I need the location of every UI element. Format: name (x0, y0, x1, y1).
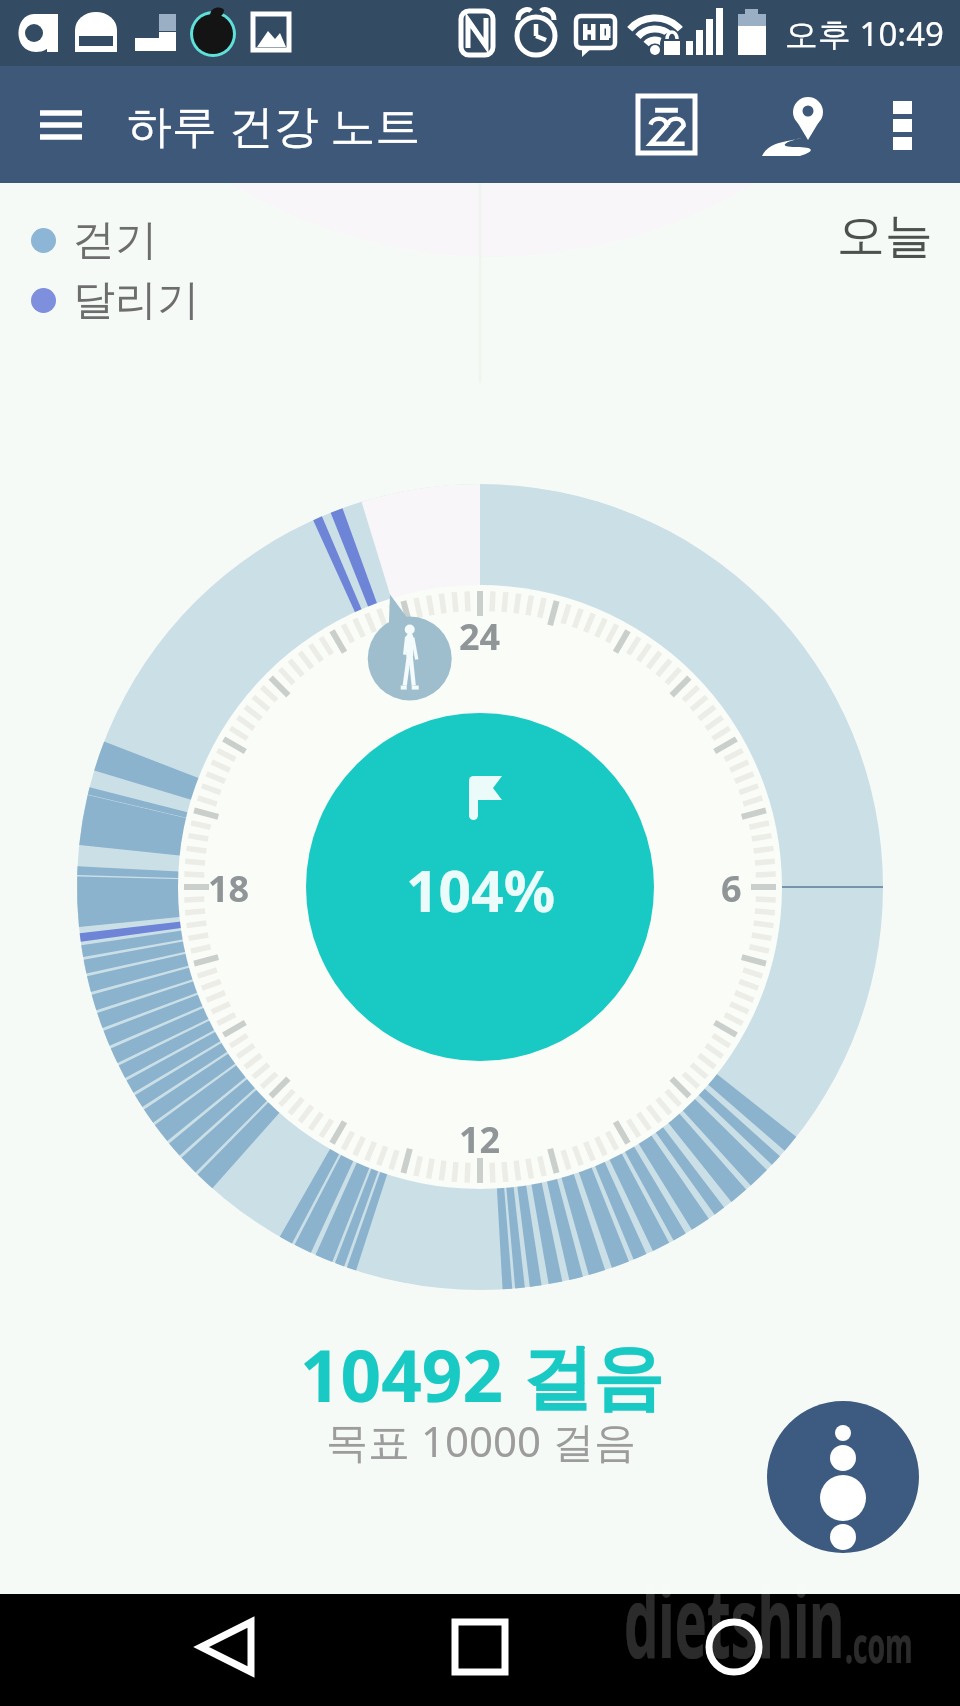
button[interactable]: 달리기 (31, 274, 199, 327)
button[interactable]: Home (425, 1591, 535, 1703)
staticText: 오후 10:49 (785, 11, 944, 56)
button[interactable]: Activity options (767, 1401, 919, 1553)
staticText: 하루 건강 노트 (127, 94, 421, 155)
button[interactable]: Back (172, 1591, 282, 1703)
button[interactable]: Recent apps (679, 1591, 789, 1703)
staticText: 18 (208, 864, 250, 913)
staticText: 목표 10000 걸음 (326, 1412, 636, 1469)
staticText: 104% (406, 851, 556, 929)
staticText: 12 (459, 1115, 501, 1164)
staticText: .com (845, 1609, 913, 1678)
button[interactable]: More options (845, 66, 960, 183)
staticText: 걷기 (73, 214, 157, 267)
button[interactable]: Navigation menu (0, 66, 122, 183)
staticText: 달리기 (73, 274, 199, 327)
staticText: 24 (459, 612, 501, 661)
staticText: 10492 걸음 (300, 1326, 664, 1423)
button[interactable]: Calendar (586, 66, 747, 183)
button[interactable]: 걷기 (31, 214, 157, 267)
staticText: 6 (721, 864, 742, 913)
staticText: 오늘 (837, 206, 933, 266)
staticText: dietshin (624, 1553, 845, 1687)
button[interactable]: Route map (747, 66, 845, 183)
